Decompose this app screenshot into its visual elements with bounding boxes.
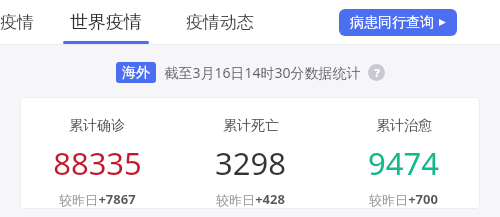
button[interactable]: 累计确诊	[20, 97, 174, 208]
staticText: +7867	[98, 190, 136, 208]
staticText: 较昨日	[59, 192, 98, 208]
staticText: 疫情动态	[186, 12, 254, 33]
staticText: 3298	[215, 142, 286, 184]
staticText: 世界疫情	[70, 11, 142, 34]
button[interactable]: 累计治愈	[327, 97, 480, 208]
staticText: 截至3月16日14时30分数据统计	[164, 63, 361, 82]
staticText: 9474	[368, 142, 439, 184]
button[interactable]: 病患同行查询	[339, 9, 457, 36]
button[interactable]: 疫情动态	[172, 0, 267, 44]
staticText: +428	[255, 190, 285, 208]
button[interactable]: 国内疫情	[0, 0, 42, 44]
staticText: 较昨日	[216, 192, 255, 208]
staticText: 国内疫情	[0, 12, 34, 33]
staticText: 累计死亡	[223, 117, 279, 135]
button[interactable]: 海外	[116, 62, 156, 83]
staticText: 较昨日	[369, 192, 408, 208]
staticText: ?	[374, 65, 380, 80]
staticText: 海外	[122, 64, 150, 82]
staticText: 累计确诊	[69, 117, 125, 135]
button[interactable]: 数据说明	[368, 64, 385, 81]
staticText: 累计治愈	[376, 117, 432, 135]
staticText: 病患同行查询	[350, 14, 434, 32]
staticText: +700	[408, 190, 438, 208]
staticText: 88335	[53, 142, 142, 184]
button[interactable]: 累计死亡	[174, 97, 327, 208]
button[interactable]: 世界疫情	[58, 0, 153, 44]
